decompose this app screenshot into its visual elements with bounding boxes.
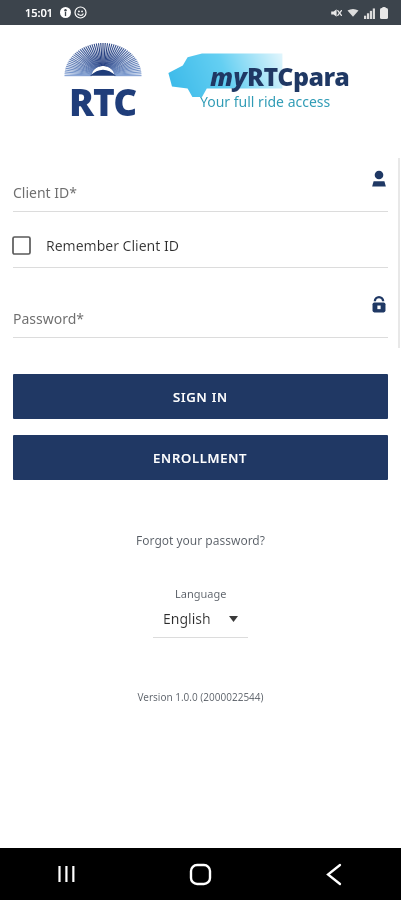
staticText: Client ID* (13, 183, 77, 202)
staticText: Version 1.0.0 (2000022544) (0, 690, 401, 704)
staticText: Password* (13, 309, 85, 328)
other: Password (370, 296, 388, 314)
staticText: SIGN IN (173, 388, 228, 406)
staticText: my (210, 59, 247, 93)
staticText: RTC (69, 76, 137, 126)
staticText: English (163, 609, 211, 628)
button[interactable]: Client ID* (0, 168, 401, 212)
button[interactable]: Recent apps (0, 848, 133, 900)
button[interactable]: SIGN IN (13, 374, 388, 419)
button[interactable]: Password* (0, 294, 401, 338)
other: Client ID (370, 170, 388, 188)
button[interactable]: ENROLLMENT (13, 435, 388, 480)
button[interactable]: Back (267, 848, 401, 900)
staticText: RTCpara (247, 59, 350, 93)
staticText: Remember Client ID (46, 236, 179, 255)
staticText: Language (175, 586, 227, 601)
button[interactable]: Home (133, 848, 267, 900)
staticText: Your full ride access (200, 92, 331, 111)
staticText: 15:01 (25, 5, 54, 20)
button[interactable]: Forgot your password? (0, 528, 401, 552)
button[interactable]: Remember Client ID (0, 234, 401, 257)
button[interactable]: English (153, 609, 248, 638)
staticText: ENROLLMENT (153, 449, 248, 467)
